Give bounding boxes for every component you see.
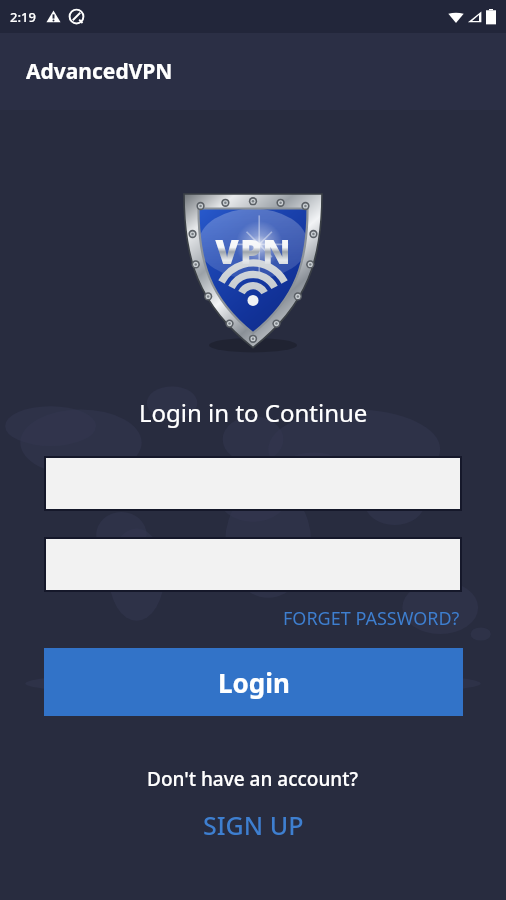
staticText: FORGET PASSWORD? [283, 606, 460, 631]
staticText: 2:19 [10, 8, 36, 26]
staticText: VPN [215, 228, 292, 274]
staticText: Login in to Continue [139, 396, 368, 429]
button[interactable]: Login [44, 648, 463, 716]
staticText: AdvancedVPN [26, 57, 173, 86]
staticText: SIGN UP [203, 808, 304, 842]
button[interactable]: SIGN UP [197, 806, 310, 844]
staticText: Don't have an account? [147, 766, 359, 792]
staticText: Login [218, 665, 290, 700]
button[interactable]: FORGET PASSWORD? [281, 602, 462, 635]
